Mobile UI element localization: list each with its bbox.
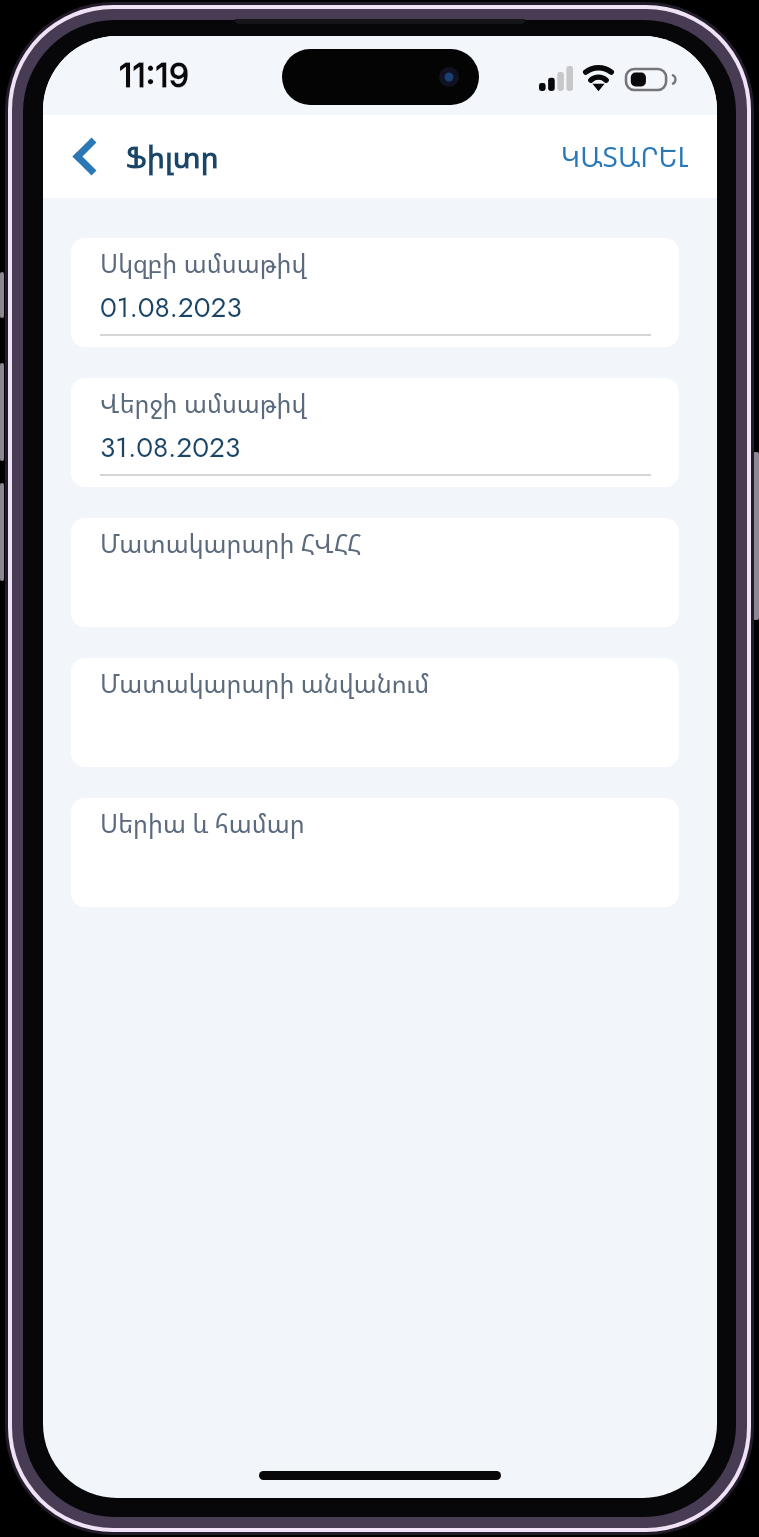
other: Back [74, 139, 95, 174]
button[interactable]: Սկզբի ամսաթիվ [71, 238, 679, 347]
staticText: Մատակարարի անվանում [100, 666, 430, 700]
button[interactable]: Back [43, 124, 237, 189]
staticText: Ֆիլտր [126, 136, 219, 177]
staticText: 01.08.2023 [100, 287, 242, 327]
staticText: 11:19 [119, 55, 190, 95]
staticText: 31.08.2023 [100, 427, 241, 467]
button[interactable]: Վերջի ամսաթիվ [71, 378, 679, 487]
button[interactable]: ԿԱՏԱՐԵԼ [531, 120, 717, 193]
staticText: ԿԱՏԱՐԵԼ [561, 138, 689, 175]
staticText: Սերիա և համար [100, 806, 305, 840]
staticText: Մատակարարի ՀՎՀՀ [100, 526, 362, 560]
button[interactable]: Մատակարարի ՀՎՀՀ [71, 518, 679, 627]
staticText: Սկզբի ամսաթիվ [100, 246, 307, 280]
button[interactable]: Մատակարարի անվանում [71, 658, 679, 767]
staticText: Վերջի ամսաթիվ [100, 386, 307, 420]
button[interactable]: Սերիա և համար [71, 798, 679, 907]
